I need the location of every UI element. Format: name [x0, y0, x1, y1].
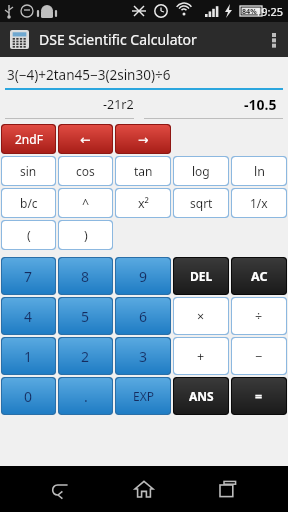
button[interactable]: cos: [59, 157, 112, 185]
button[interactable]: ANS: [174, 378, 228, 414]
staticText: →: [138, 132, 149, 147]
staticText: cos: [76, 163, 95, 179]
button[interactable]: 2: [59, 338, 112, 374]
staticText: 84%: [242, 6, 257, 16]
staticText: 4: [24, 307, 33, 326]
staticText: log: [192, 163, 210, 179]
staticText: 9: [139, 267, 148, 286]
staticText: 3: [139, 347, 148, 366]
staticText: -21r2: [103, 96, 134, 113]
button[interactable]: −: [232, 338, 286, 374]
button[interactable]: Home: [120, 466, 168, 512]
button[interactable]: 4: [2, 298, 55, 334]
staticText: .: [84, 387, 88, 406]
staticText: -10.5: [244, 95, 277, 114]
button[interactable]: AC: [232, 258, 286, 294]
button[interactable]: 5: [59, 298, 112, 334]
button[interactable]: ): [59, 221, 112, 249]
staticText: 6: [139, 307, 148, 326]
button[interactable]: 6: [116, 298, 170, 334]
button[interactable]: 1/x: [232, 189, 286, 217]
button[interactable]: log: [174, 157, 228, 185]
staticText: ANS: [189, 388, 214, 404]
staticText: 2: [81, 347, 90, 366]
button[interactable]: 3: [116, 338, 170, 374]
button[interactable]: sqrt: [174, 189, 228, 217]
button[interactable]: 2ndF: [2, 125, 55, 153]
button[interactable]: 0: [2, 378, 55, 414]
staticText: 1: [24, 347, 33, 366]
staticText: +: [197, 348, 205, 365]
button[interactable]: Recents: [204, 466, 252, 512]
staticText: ÷: [255, 308, 263, 325]
staticText: ^: [82, 195, 90, 212]
staticText: b/c: [20, 195, 38, 211]
button[interactable]: ×: [174, 298, 228, 334]
button[interactable]: ^: [59, 189, 112, 217]
button[interactable]: 7: [2, 258, 55, 294]
button[interactable]: EXP: [116, 378, 170, 414]
button[interactable]: More options: [260, 22, 288, 57]
staticText: tan: [134, 163, 153, 179]
button[interactable]: ←: [59, 125, 112, 153]
button[interactable]: 8: [59, 258, 112, 294]
staticText: AC: [251, 268, 268, 285]
button[interactable]: 1: [2, 338, 55, 374]
staticText: sin: [20, 163, 37, 179]
button[interactable]: (: [2, 221, 55, 249]
staticText: x²: [138, 195, 149, 212]
staticText: (: [27, 227, 31, 244]
staticText: DEL: [190, 268, 213, 284]
button[interactable]: x²: [116, 189, 170, 217]
staticText: 8: [81, 267, 90, 286]
button[interactable]: b/c: [2, 189, 55, 217]
staticText: =: [255, 388, 263, 405]
button[interactable]: →: [116, 125, 170, 153]
button[interactable]: .: [59, 378, 112, 414]
staticText: ←: [80, 132, 91, 147]
button[interactable]: tan: [116, 157, 170, 185]
button[interactable]: sin: [2, 157, 55, 185]
button[interactable]: ÷: [232, 298, 286, 334]
button[interactable]: =: [232, 378, 286, 414]
staticText: 5: [81, 307, 90, 326]
staticText: sqrt: [190, 195, 213, 211]
button[interactable]: +: [174, 338, 228, 374]
staticText: 1/x: [250, 195, 268, 211]
staticText: EXP: [133, 388, 154, 404]
staticText: 2ndF: [15, 131, 43, 147]
button[interactable]: 9: [116, 258, 170, 294]
button[interactable]: ln: [232, 157, 286, 185]
staticText: ln: [254, 163, 265, 180]
staticText: ×: [197, 308, 205, 325]
staticText: 3(−4)+2tan45−3(2sin30)÷6: [7, 66, 171, 84]
staticText: −: [255, 348, 263, 365]
button[interactable]: DEL: [174, 258, 228, 294]
staticText: DSE Scientific Calculator: [39, 30, 197, 49]
staticText: ): [84, 227, 88, 244]
staticText: 7: [24, 267, 33, 286]
button[interactable]: Back: [36, 466, 84, 512]
staticText: 0: [24, 387, 33, 406]
staticText: 19:25: [255, 4, 284, 19]
